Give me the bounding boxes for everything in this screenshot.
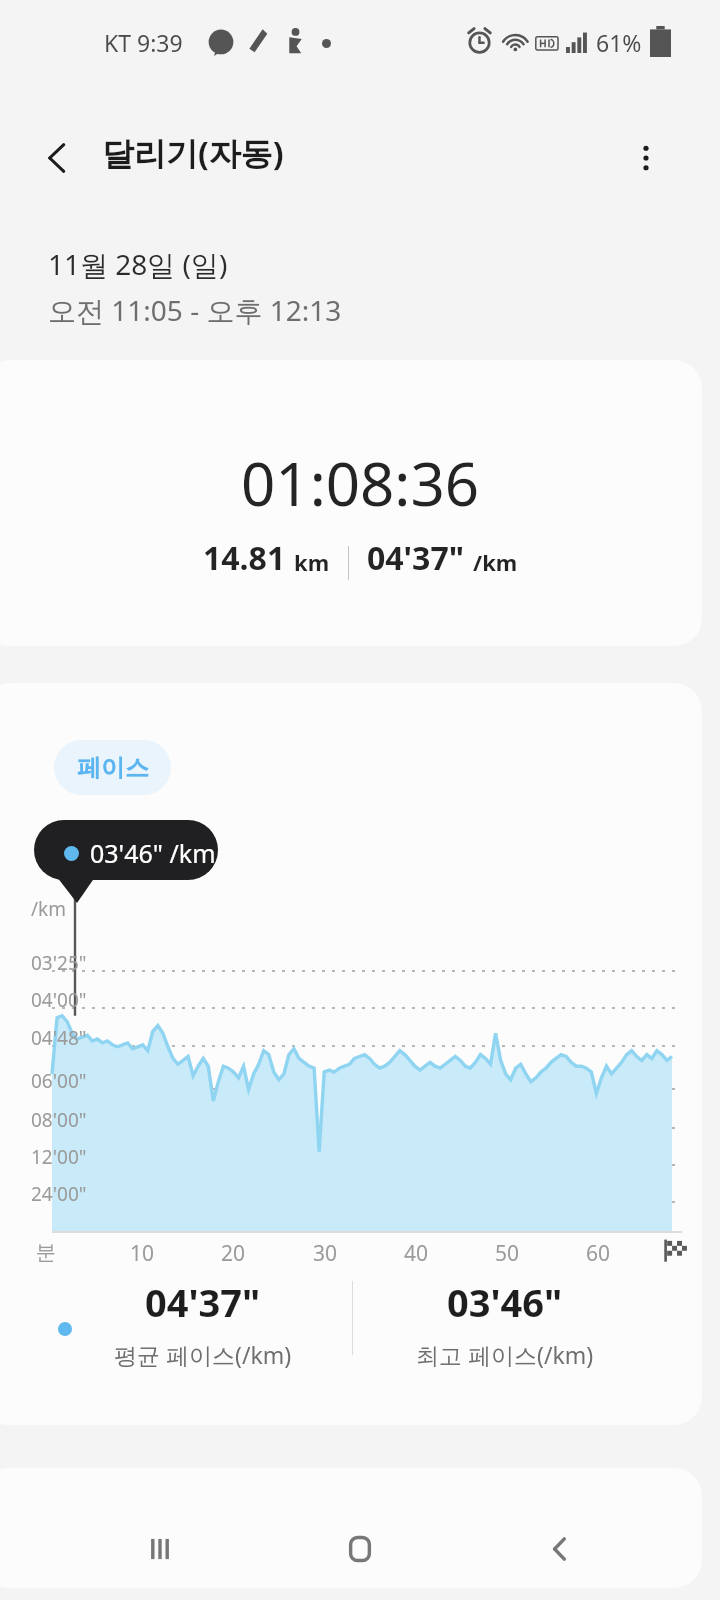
staticText: 10 bbox=[130, 1239, 155, 1268]
staticText: 08'00" bbox=[31, 1107, 87, 1133]
staticText: 14.81 bbox=[203, 536, 286, 580]
staticText: 04'37" bbox=[367, 536, 465, 580]
staticText: 04'48" bbox=[31, 1025, 87, 1051]
button[interactable]: Recent apps bbox=[118, 1507, 202, 1591]
staticText: 24'00" bbox=[31, 1181, 87, 1207]
staticText: 오전 11:05 - 오후 12:13 bbox=[48, 291, 342, 329]
button[interactable]: 페이스 bbox=[54, 740, 171, 795]
staticText: 04'00" bbox=[31, 987, 87, 1013]
staticText: 11월 28일 (일) bbox=[48, 245, 228, 283]
staticText: 페이스 bbox=[77, 753, 149, 783]
staticText: 06'00" bbox=[31, 1068, 87, 1094]
button[interactable]: Home bbox=[318, 1507, 402, 1591]
button[interactable]: More options bbox=[612, 124, 680, 192]
button[interactable] bbox=[0, 683, 702, 1425]
staticText: KT 9:39 bbox=[104, 27, 183, 58]
staticText: 평균 페이스(/km) bbox=[114, 1339, 292, 1370]
staticText: 03'46" /km bbox=[90, 836, 216, 870]
button[interactable]: Back bbox=[518, 1507, 602, 1591]
staticText: 20 bbox=[221, 1239, 246, 1268]
button[interactable]: Back bbox=[24, 124, 92, 192]
staticText: 달리기(자동) bbox=[102, 131, 284, 175]
staticText: 최고 페이스(/km) bbox=[416, 1339, 594, 1370]
button[interactable] bbox=[0, 1468, 702, 1588]
staticText: 61% bbox=[596, 27, 642, 58]
staticText: /km bbox=[31, 896, 66, 922]
staticText: 분 bbox=[36, 1240, 56, 1265]
staticText: 40 bbox=[404, 1239, 429, 1268]
staticText: 03'46" bbox=[447, 1276, 563, 1328]
staticText: 50 bbox=[495, 1239, 520, 1268]
staticText: 60 bbox=[586, 1239, 611, 1268]
staticText: 04'37" bbox=[145, 1276, 261, 1328]
button[interactable]: 03'46" bbox=[360, 1276, 650, 1388]
staticText: /km bbox=[473, 547, 518, 577]
staticText: 03'25" bbox=[31, 950, 87, 976]
staticText: 12'00" bbox=[31, 1144, 87, 1170]
button[interactable] bbox=[0, 360, 702, 646]
staticText: 01:08:36 bbox=[241, 442, 480, 524]
staticText: km bbox=[294, 547, 330, 577]
button[interactable]: 04'37" bbox=[58, 1276, 348, 1388]
staticText: 30 bbox=[313, 1239, 338, 1268]
